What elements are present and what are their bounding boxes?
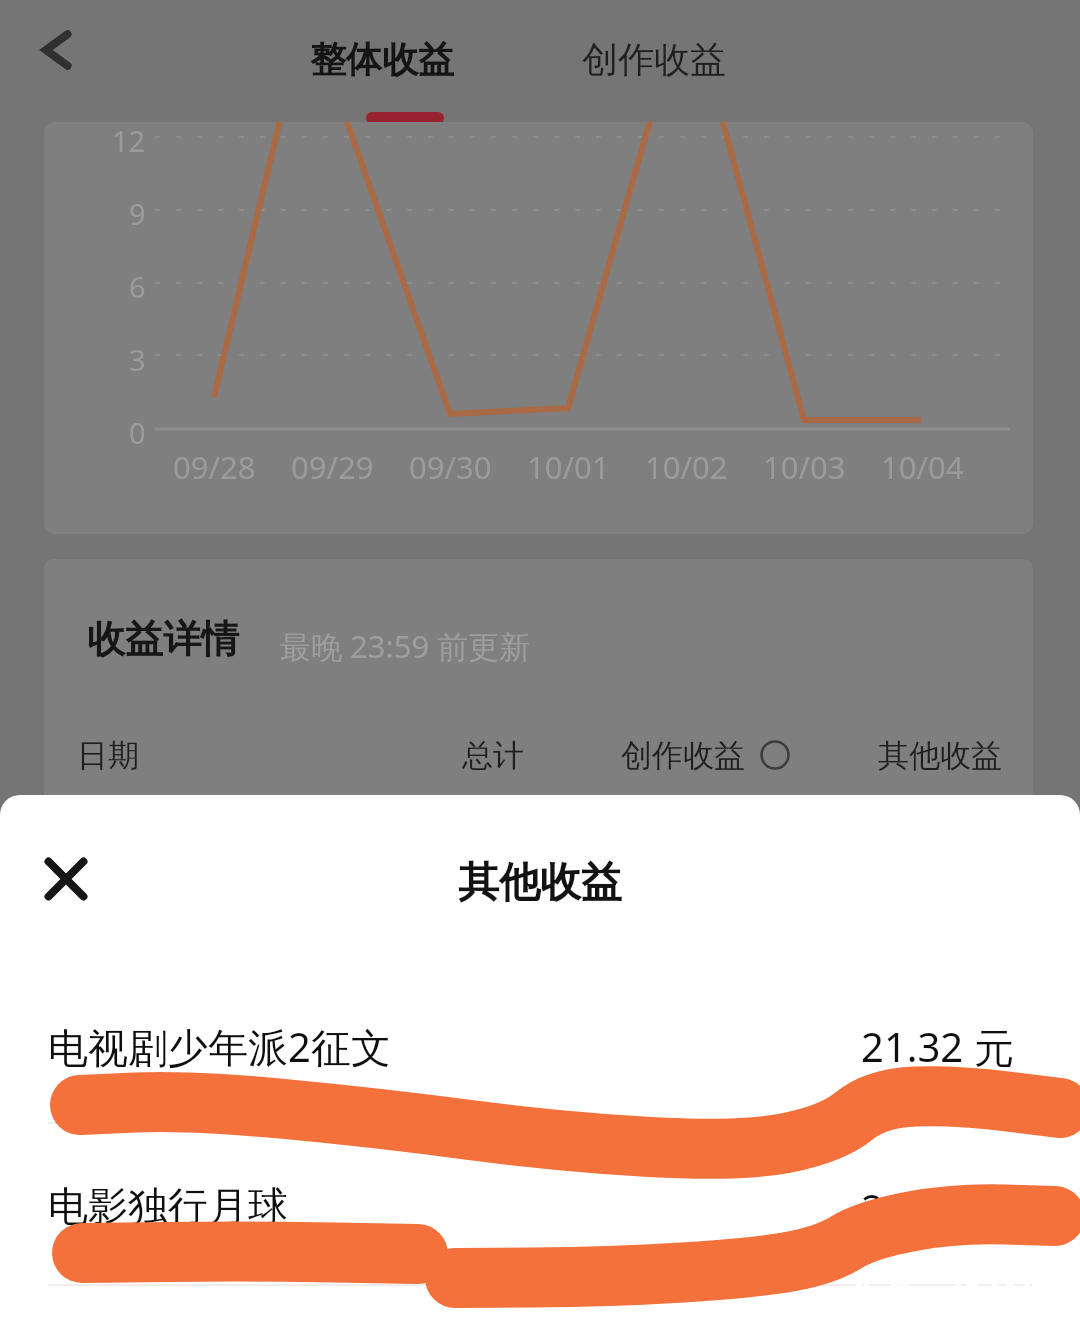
staticText: 10/03 (763, 446, 846, 488)
button[interactable]: Help (760, 740, 790, 770)
staticText: 10/04 (881, 446, 964, 488)
staticText: 日期 (77, 736, 139, 775)
staticText: 09/30 (409, 446, 492, 488)
button[interactable]: 整体收益 (310, 37, 454, 82)
staticText: 10/01 (527, 446, 610, 488)
staticText: 10/02 (645, 446, 728, 488)
button[interactable]: 电视剧少年派2征文 (0, 1003, 1080, 1115)
button[interactable]: Back (20, 14, 92, 86)
staticText: 其他收益 (458, 857, 622, 909)
staticText: 09/29 (291, 446, 374, 488)
button[interactable]: 电影独行月球 (0, 1165, 1080, 1277)
staticText: 最晚 23:59 前更新 (280, 625, 531, 667)
staticText: 3 (129, 340, 146, 379)
staticText: 电影独行月球 (48, 1181, 288, 1231)
staticText: 创作收益 (621, 736, 745, 775)
staticText: 0 (129, 413, 146, 452)
staticText: 电视剧少年派2征文 (48, 1019, 391, 1074)
staticText: 总计 (462, 736, 524, 775)
staticText: 21.32 元 (861, 1019, 1014, 1074)
staticText: 头条 @逸然妈妈 (848, 1274, 1080, 1319)
staticText: 6 (129, 267, 146, 306)
staticText: 其他收益 (878, 736, 1002, 775)
staticText: 收益详情 (87, 615, 239, 663)
button[interactable]: 创作收益 (582, 37, 726, 82)
staticText: 创作收益 (582, 37, 726, 82)
button[interactable]: Close (20, 833, 112, 925)
staticText: 23.04 元 (861, 1181, 1014, 1236)
staticText: 9 (129, 194, 146, 233)
staticText: 整体收益 (310, 37, 454, 82)
staticText: 09/28 (173, 446, 256, 488)
button[interactable]: 创作收益 (621, 736, 745, 775)
staticText: 12 (112, 121, 146, 160)
